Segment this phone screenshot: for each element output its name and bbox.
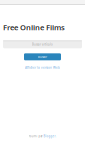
button[interactable]: Afficher la version Web (25, 65, 60, 70)
staticText: Blogger. (43, 134, 56, 138)
staticText: Free Online Films (3, 22, 65, 32)
button[interactable]: Buscar (24, 53, 61, 60)
staticText: Afficher la version Web (25, 65, 60, 70)
staticText: Fourni par (28, 134, 42, 138)
staticText: Buscar artículo (32, 42, 53, 46)
staticText: Buscar (38, 55, 47, 59)
button[interactable]: Blogger. (43, 134, 56, 138)
